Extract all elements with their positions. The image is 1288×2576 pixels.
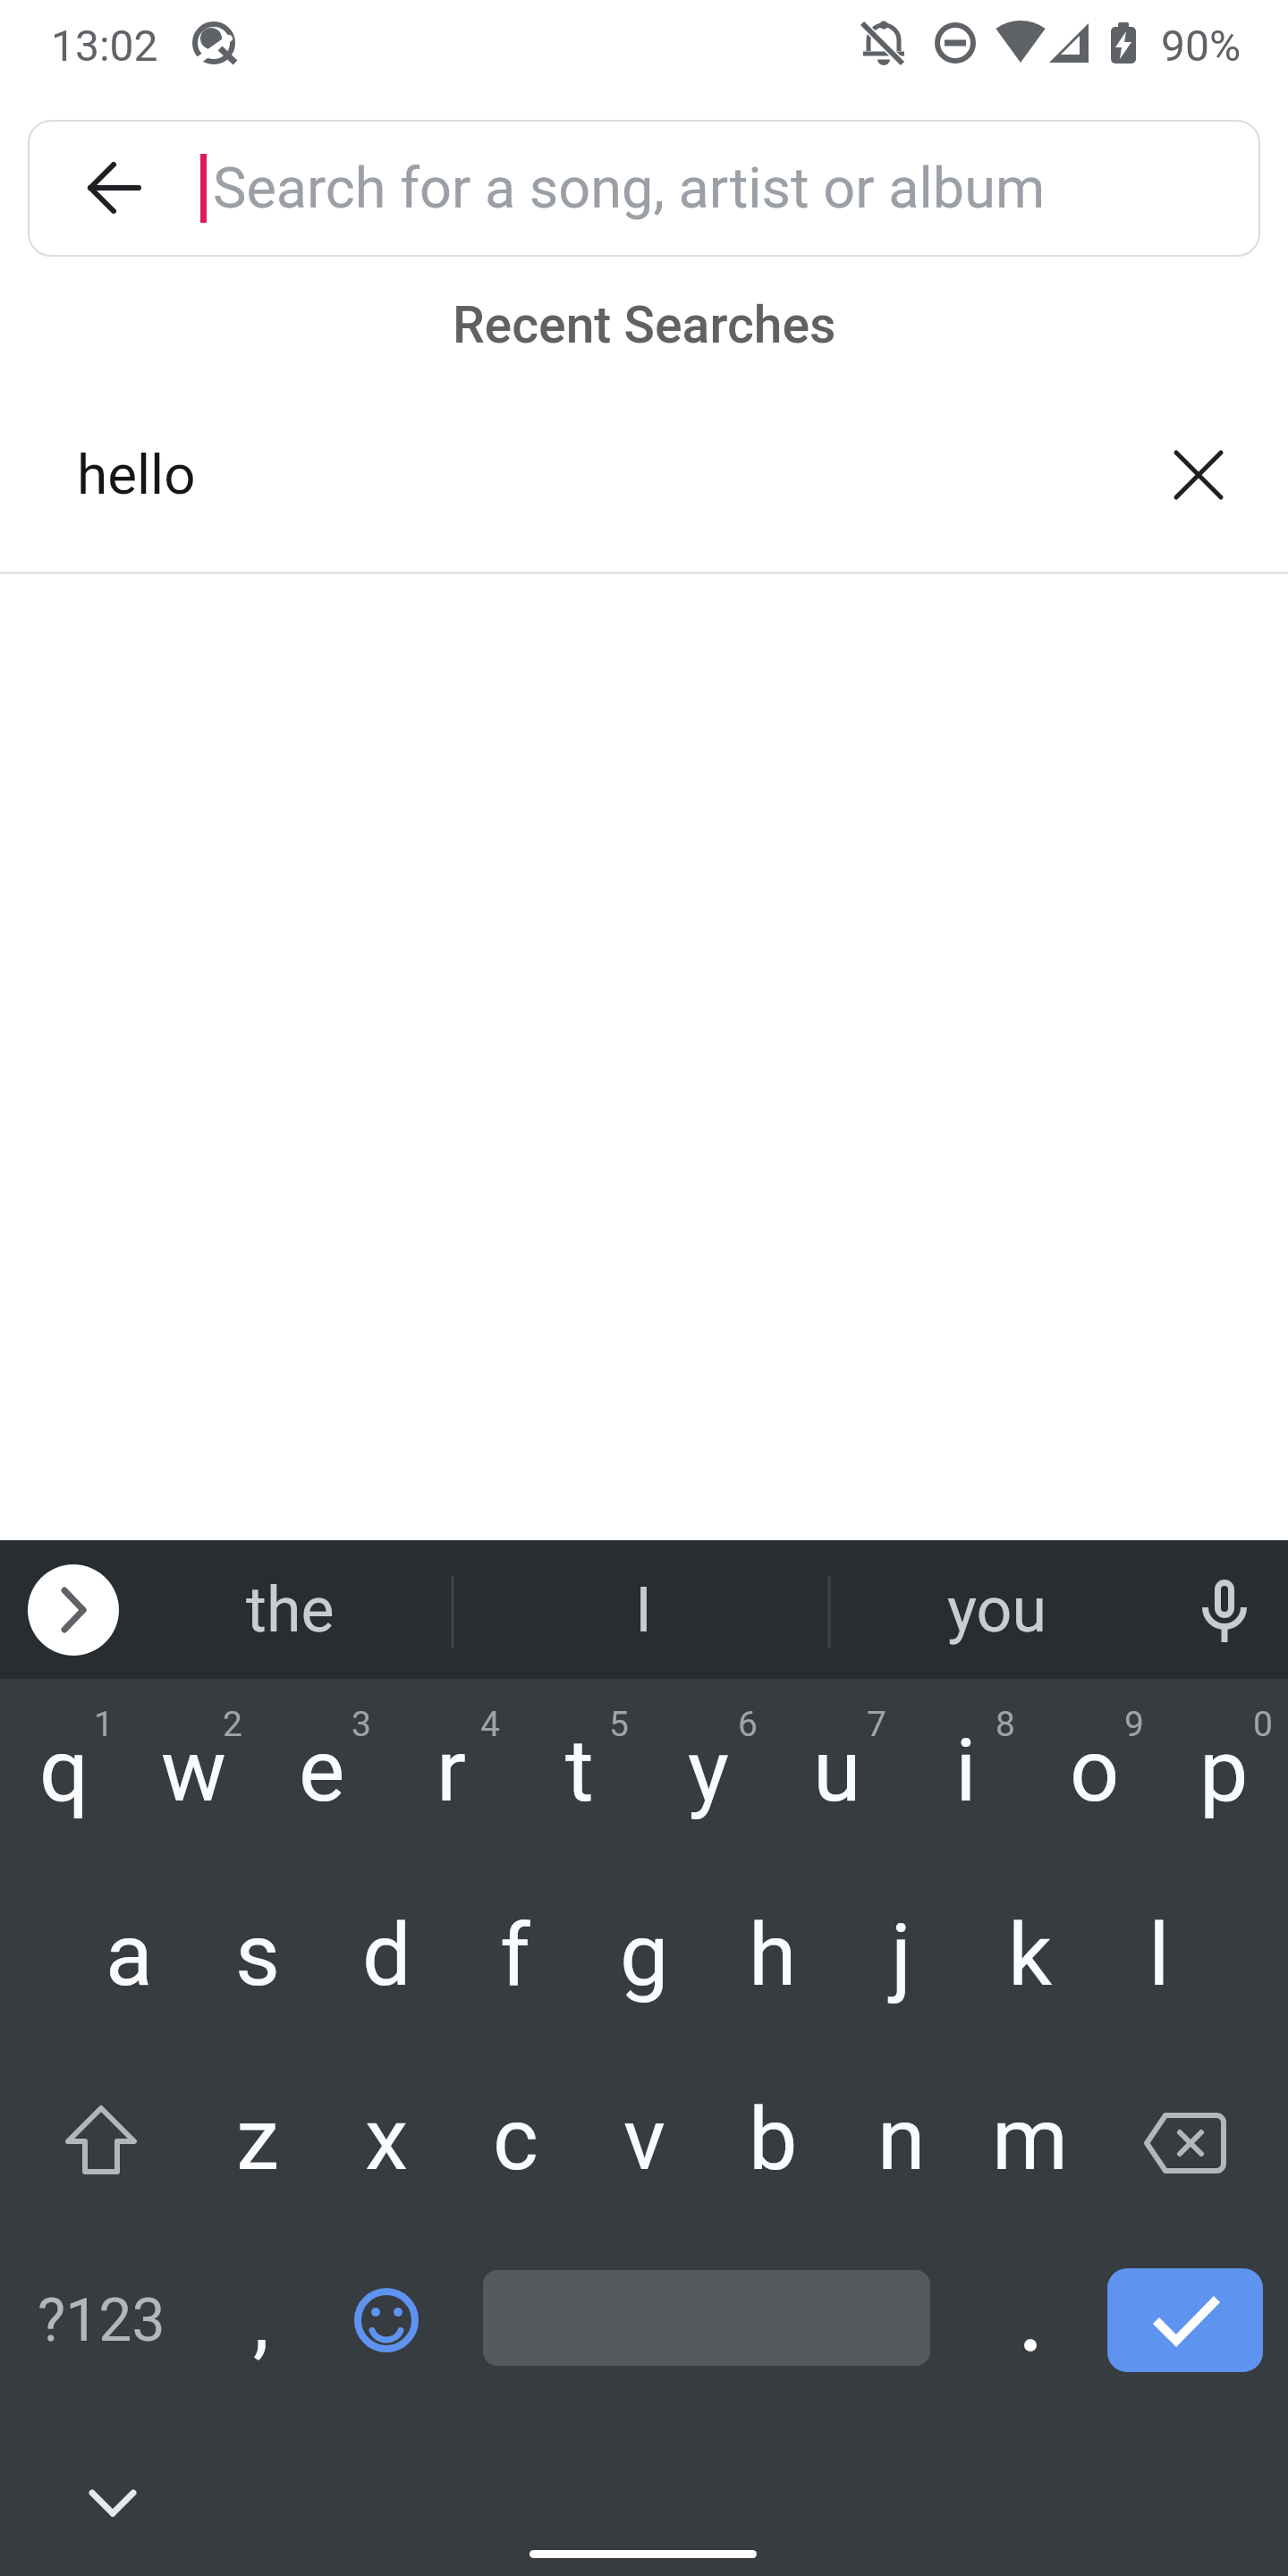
staticText: g	[620, 1904, 669, 2006]
staticText: 3	[352, 1704, 371, 1745]
button[interactable]: j	[837, 1863, 966, 2047]
staticText: p	[1199, 1720, 1249, 1822]
staticText: x	[365, 2089, 409, 2190]
button[interactable]: x	[322, 2047, 451, 2232]
button[interactable]: u	[773, 1679, 902, 1863]
button[interactable]	[68, 2458, 157, 2547]
button[interactable]	[28, 120, 1260, 257]
button[interactable]	[1154, 430, 1243, 520]
staticText: z	[236, 2089, 280, 2190]
staticText: 7	[867, 1704, 886, 1745]
button[interactable]: l	[1095, 1863, 1224, 2047]
staticText: 5	[609, 1704, 629, 1745]
button[interactable]	[1177, 1563, 1267, 1653]
button[interactable]: r	[386, 1679, 515, 1863]
staticText: c	[493, 2089, 538, 2190]
button[interactable]	[0, 2047, 193, 2232]
staticText: 4	[480, 1704, 500, 1745]
staticText: y	[688, 1720, 729, 1822]
button[interactable]: o	[1030, 1679, 1159, 1863]
button[interactable]: ?123	[18, 2273, 184, 2368]
button[interactable]: z	[193, 2047, 322, 2232]
staticText: ?123	[38, 2286, 165, 2355]
staticText: q	[39, 1720, 89, 1822]
staticText: 0	[1253, 1704, 1273, 1745]
button[interactable]: hello	[77, 429, 524, 519]
staticText: 1	[94, 1704, 114, 1745]
staticText: 13:02	[51, 21, 158, 71]
staticText: k	[1008, 1904, 1053, 2006]
button[interactable]	[1095, 2047, 1288, 2232]
button[interactable]: the	[200, 1565, 379, 1655]
button[interactable]: f	[451, 1863, 580, 2047]
button[interactable]: c	[451, 2047, 580, 2232]
staticText: Search for a song, artist or album	[213, 156, 1046, 222]
staticText: t	[565, 1720, 594, 1822]
button[interactable]: you	[908, 1565, 1087, 1655]
staticText: Recent Searches	[453, 295, 836, 355]
button[interactable]: a	[64, 1863, 193, 2047]
button[interactable]: q	[0, 1679, 129, 1863]
button[interactable]	[28, 1564, 119, 1656]
staticText: h	[749, 1904, 797, 2006]
button[interactable]	[483, 2270, 930, 2366]
staticText: j	[891, 1904, 912, 2006]
staticText: n	[877, 2089, 926, 2190]
button[interactable]: p	[1159, 1679, 1288, 1863]
staticText: i	[955, 1720, 977, 1822]
staticText: I	[635, 1573, 653, 1647]
staticText: u	[813, 1720, 861, 1822]
button[interactable]: y	[644, 1679, 773, 1863]
staticText: 90%	[1161, 21, 1241, 71]
button[interactable]	[984, 2270, 1077, 2370]
button[interactable]: w	[129, 1679, 258, 1863]
staticText: l	[1148, 1904, 1170, 2006]
staticText: r	[436, 1720, 466, 1822]
staticText: you	[947, 1573, 1047, 1647]
button[interactable]: h	[708, 1863, 837, 2047]
button[interactable]: t	[515, 1679, 644, 1863]
button[interactable]: v	[580, 2047, 708, 2232]
button[interactable]: m	[966, 2047, 1095, 2232]
staticText: the	[246, 1573, 335, 1647]
staticText: e	[299, 1720, 345, 1822]
staticText: w	[161, 1720, 226, 1822]
staticText: v	[623, 2089, 665, 2190]
button[interactable]	[1107, 2268, 1263, 2372]
staticText: m	[992, 2089, 1069, 2190]
button[interactable]	[336, 2270, 436, 2370]
button[interactable]: ,	[215, 2269, 308, 2373]
staticText: 8	[996, 1704, 1015, 1745]
button[interactable]: s	[193, 1863, 322, 2047]
staticText: b	[749, 2089, 798, 2190]
staticText: f	[500, 1904, 530, 2006]
staticText: d	[362, 1904, 411, 2006]
button[interactable]: k	[966, 1863, 1095, 2047]
staticText: 6	[738, 1704, 758, 1745]
staticText: 9	[1124, 1704, 1144, 1745]
staticText: hello	[77, 442, 196, 507]
button[interactable]: g	[580, 1863, 708, 2047]
staticText: o	[1070, 1720, 1120, 1822]
button[interactable]: b	[708, 2047, 837, 2232]
button[interactable]: n	[837, 2047, 966, 2232]
button[interactable]: I	[555, 1565, 733, 1655]
staticText: ,	[253, 2275, 269, 2368]
button[interactable]: e	[258, 1679, 386, 1863]
button[interactable]: d	[322, 1863, 451, 2047]
button[interactable]: i	[902, 1679, 1030, 1863]
staticText: a	[106, 1904, 153, 2006]
staticText: s	[235, 1904, 281, 2006]
staticText: 2	[223, 1704, 242, 1745]
